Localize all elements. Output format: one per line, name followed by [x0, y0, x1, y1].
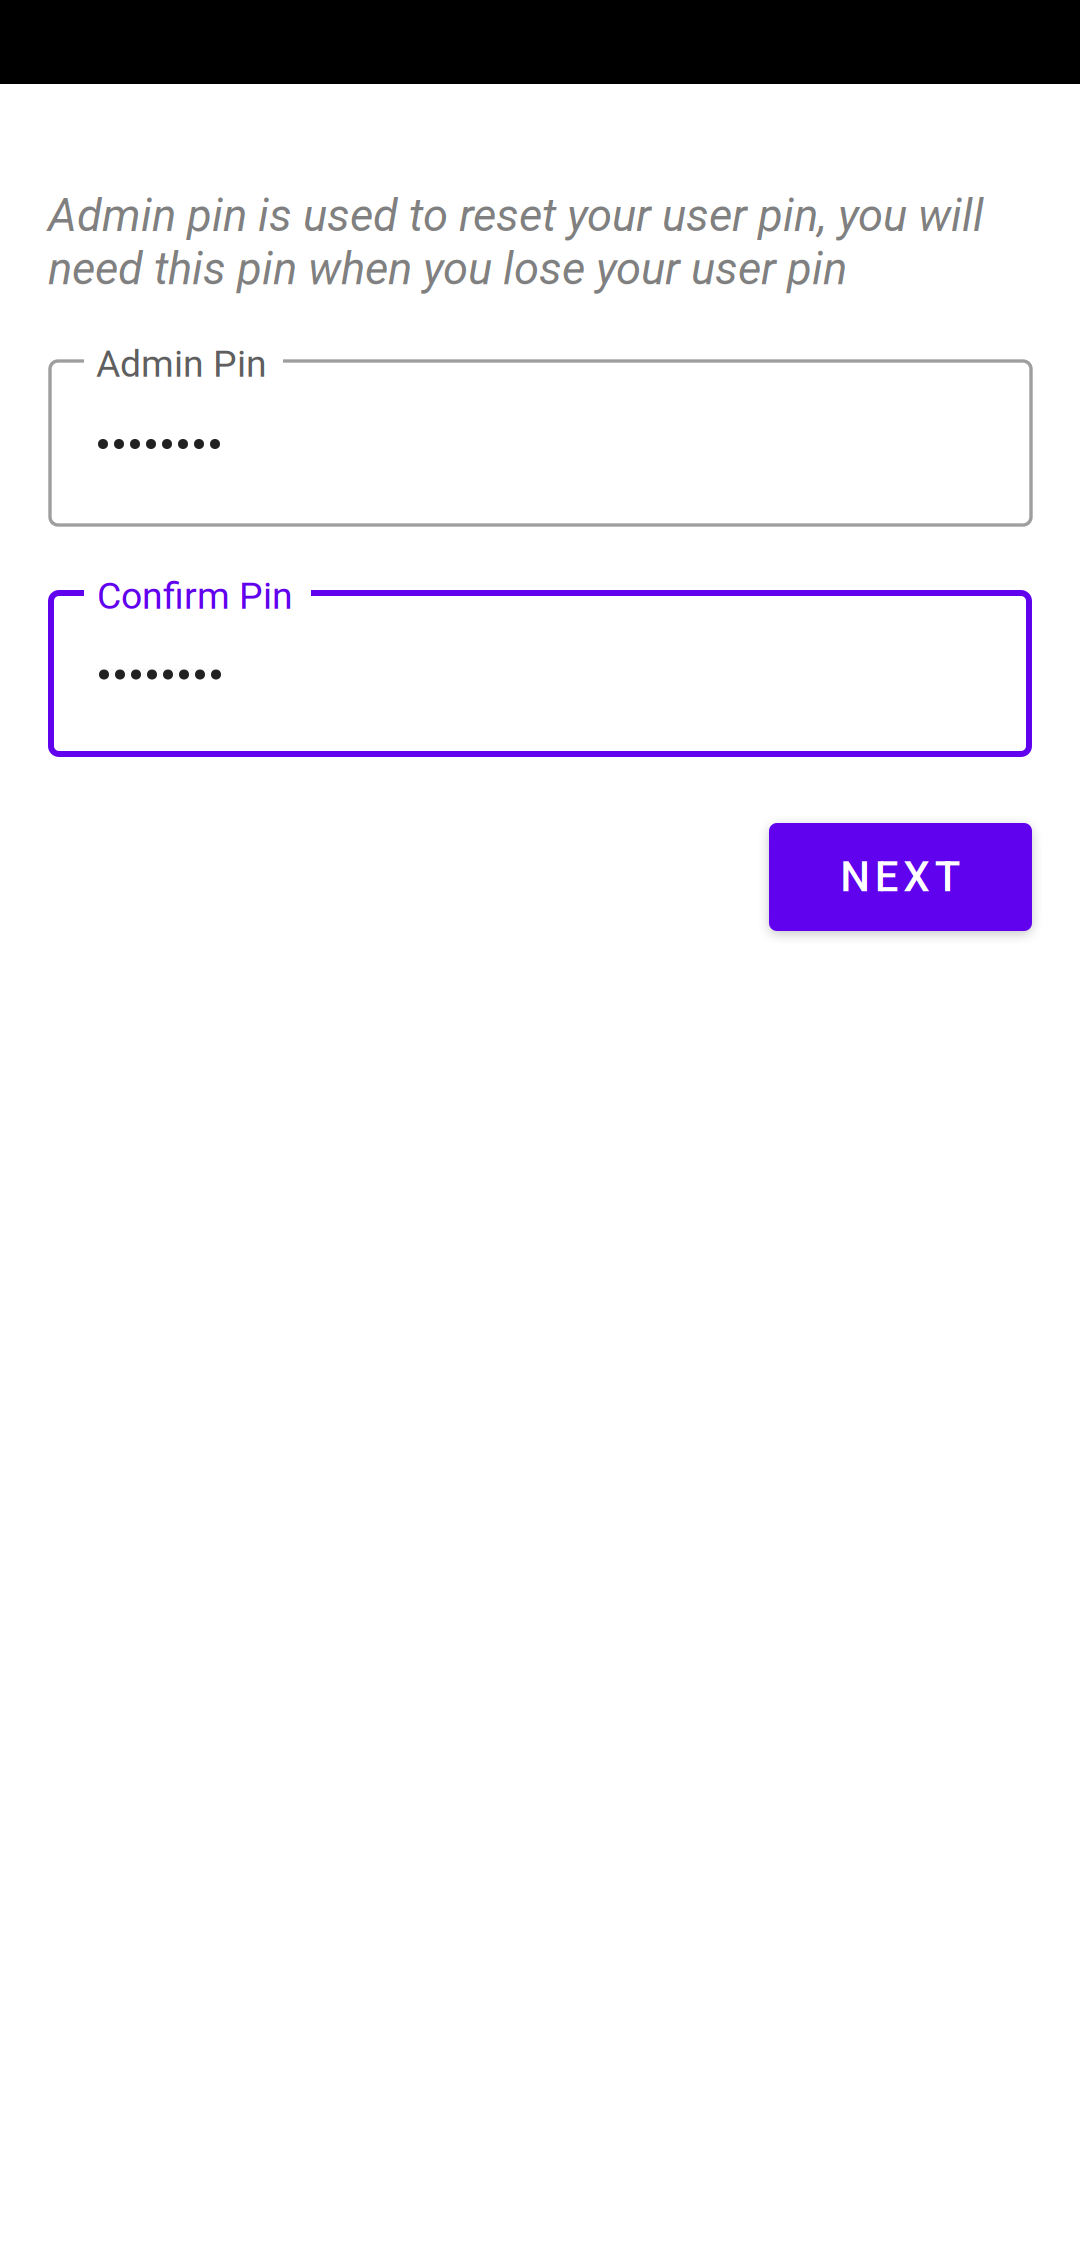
staticText: Admin Pin — [96, 342, 267, 386]
button[interactable]: Confirm Pin — [51, 593, 1029, 754]
staticText: Confirm Pin — [97, 574, 293, 618]
staticText: Admin pin is used to reset your user pin… — [48, 189, 984, 295]
button[interactable]: NEXT — [769, 823, 1032, 931]
staticText: NEXT — [840, 852, 961, 902]
button[interactable]: Admin Pin — [50, 361, 1031, 525]
